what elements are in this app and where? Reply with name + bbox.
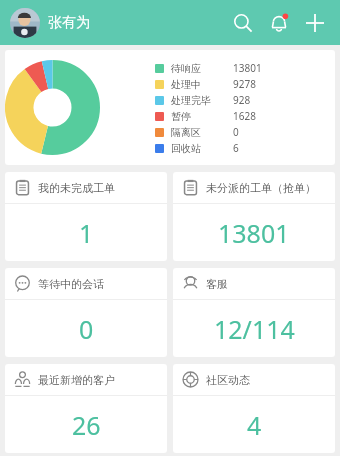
staticText: 26 bbox=[72, 408, 101, 442]
button[interactable]: 我的未完成工单 bbox=[5, 172, 167, 261]
button[interactable]: Search bbox=[228, 8, 258, 38]
button[interactable]: 社区动态 bbox=[173, 364, 335, 453]
staticText: 0 bbox=[79, 312, 94, 346]
staticText: 0 bbox=[233, 125, 239, 139]
staticText: 1628 bbox=[233, 109, 256, 123]
staticText: 1 bbox=[79, 216, 94, 250]
button[interactable]: 客服 bbox=[173, 268, 335, 357]
staticText: 处理完毕 bbox=[171, 94, 211, 107]
staticText: 我的未完成工单 bbox=[38, 181, 115, 195]
staticText: 客服 bbox=[206, 277, 228, 291]
staticText: 张有为 bbox=[48, 14, 90, 32]
button[interactable]: Notifications bbox=[264, 8, 294, 38]
staticText: 等待中的会话 bbox=[38, 277, 104, 291]
staticText: 回收站 bbox=[171, 142, 201, 155]
staticText: 13801 bbox=[218, 216, 290, 250]
staticText: 9278 bbox=[233, 77, 256, 91]
staticText: 社区动态 bbox=[206, 373, 250, 387]
staticText: 6 bbox=[233, 141, 239, 155]
button[interactable]: 张有为 bbox=[10, 8, 90, 38]
button[interactable]: 未分派的工单（抢单） bbox=[173, 172, 335, 261]
staticText: 暂停 bbox=[171, 110, 191, 123]
staticText: 928 bbox=[233, 93, 251, 107]
staticText: 13801 bbox=[233, 61, 262, 75]
button[interactable]: Add bbox=[300, 8, 330, 38]
button[interactable]: 等待中的会话 bbox=[5, 268, 167, 357]
staticText: 未分派的工单（抢单） bbox=[206, 181, 316, 195]
staticText: 待响应 bbox=[171, 62, 201, 75]
staticText: 隔离区 bbox=[171, 126, 201, 139]
staticText: 12/114 bbox=[214, 312, 295, 346]
staticText: 4 bbox=[247, 408, 262, 442]
staticText: 最近新增的客户 bbox=[38, 373, 115, 387]
staticText: 处理中 bbox=[171, 78, 201, 91]
button[interactable]: 最近新增的客户 bbox=[5, 364, 167, 453]
